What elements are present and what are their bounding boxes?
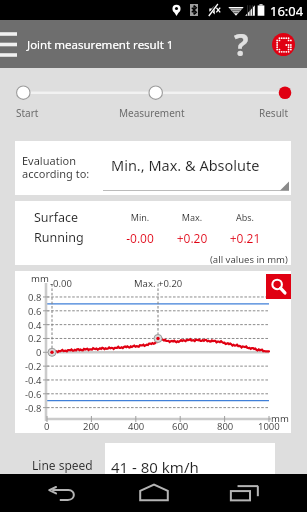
staticText: 600 xyxy=(172,420,189,433)
staticText: -0.4 xyxy=(25,374,42,387)
staticText: Min. xyxy=(115,211,165,223)
button[interactable]: Back xyxy=(37,474,89,512)
staticText: 800 xyxy=(217,420,234,433)
staticText: 400 xyxy=(128,420,145,433)
button[interactable]: Min., Max. & Absolute xyxy=(103,145,289,191)
staticText: +0.20 xyxy=(167,230,217,246)
button[interactable]: Zoom chart xyxy=(266,274,291,299)
staticText: Max. xyxy=(167,211,217,223)
staticText: 0.2 xyxy=(28,332,42,345)
button[interactable]: Help xyxy=(226,24,256,64)
staticText: 16:04 xyxy=(270,2,304,20)
staticText: Evaluation xyxy=(22,153,76,168)
button[interactable]: Application logo xyxy=(265,23,301,65)
staticText: -0.6 xyxy=(25,388,42,401)
staticText: Joint measurement result 1 xyxy=(27,37,174,53)
staticText: 0.8 xyxy=(28,291,42,304)
staticText: 200 xyxy=(83,420,100,433)
staticText: 0 xyxy=(36,346,42,359)
staticText: -0.00 xyxy=(50,277,72,290)
staticText: Line speed xyxy=(32,457,93,473)
staticText: -0.8 xyxy=(25,402,42,415)
staticText: Result xyxy=(259,106,289,120)
staticText: mm xyxy=(271,412,289,425)
staticText: Abs. xyxy=(220,211,270,223)
staticText: Running xyxy=(34,229,84,246)
staticText: Min., Max. & Absolute xyxy=(111,155,260,175)
staticText: (all values in mm) xyxy=(210,253,288,266)
staticText: 0.6 xyxy=(28,305,42,318)
staticText: +0.21 xyxy=(220,230,270,246)
staticText: 0.4 xyxy=(28,319,42,332)
staticText: 1000 xyxy=(258,420,280,433)
button[interactable]: 41 - 80 km/h xyxy=(105,443,275,474)
staticText: Measurement xyxy=(119,106,185,120)
staticText: according to: xyxy=(22,166,90,181)
staticText: 41 - 80 km/h xyxy=(111,457,199,477)
staticText: 0 xyxy=(44,420,50,433)
staticText: Max. +0.20 xyxy=(134,277,183,290)
button[interactable]: Home xyxy=(128,474,180,512)
staticText: Surface xyxy=(34,209,79,226)
staticText: -0.2 xyxy=(25,360,42,373)
staticText: -0.00 xyxy=(115,230,165,246)
staticText: Start xyxy=(16,106,39,120)
staticText: ? xyxy=(234,24,249,64)
staticText: mm xyxy=(31,272,49,285)
button[interactable]: Navigation menu xyxy=(0,26,26,62)
button[interactable]: Recent apps xyxy=(218,474,270,512)
